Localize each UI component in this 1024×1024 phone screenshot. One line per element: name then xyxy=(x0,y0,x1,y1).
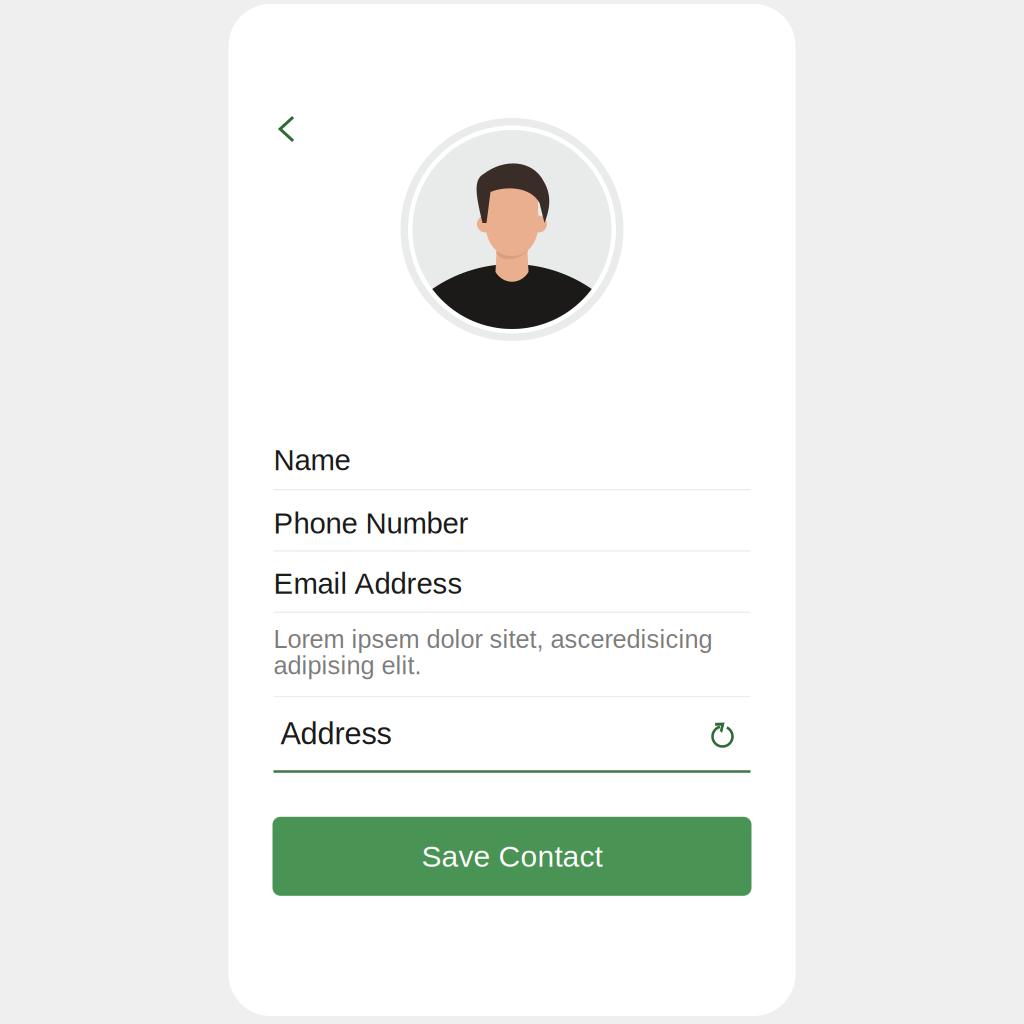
staticText: Address xyxy=(280,717,391,751)
button[interactable]: Save Contact xyxy=(272,817,751,896)
staticText: Save Contact xyxy=(421,839,602,873)
staticText: Phone Number xyxy=(273,507,468,540)
staticText: adipising elit. xyxy=(273,651,421,680)
button[interactable]: Refresh address xyxy=(702,714,742,754)
staticText: Lorem ipsem dolor sitet, asceredisicing xyxy=(273,625,712,653)
staticText: Name xyxy=(273,444,350,476)
staticText: Email Address xyxy=(273,567,462,600)
button[interactable]: Back xyxy=(262,105,310,153)
